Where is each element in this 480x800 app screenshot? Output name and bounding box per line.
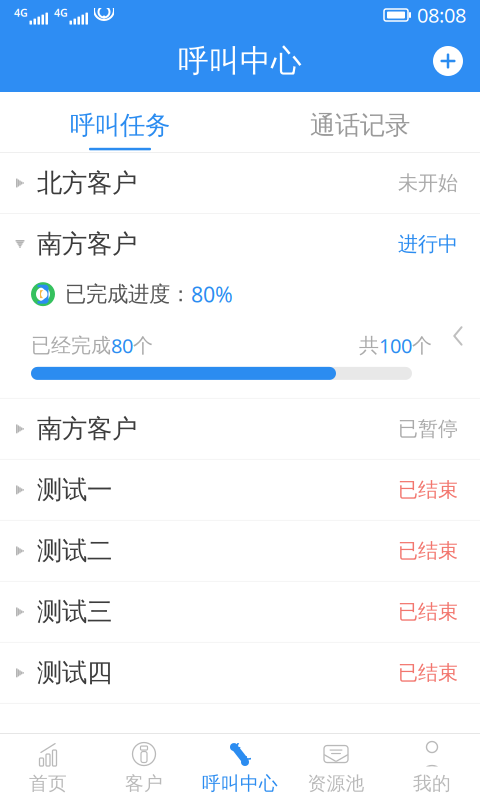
- button[interactable]: 测试二: [0, 521, 480, 581]
- staticText: 已经完成: [31, 333, 111, 358]
- staticText: 客户: [125, 772, 163, 795]
- staticText: 通话记录: [310, 110, 410, 141]
- button[interactable]: 南方客户: [0, 214, 480, 274]
- button[interactable]: 新建任务: [424, 37, 472, 85]
- button[interactable]: 南方客户: [0, 399, 480, 459]
- staticText: 已结束: [398, 600, 458, 624]
- staticText: 呼叫中心: [178, 42, 302, 80]
- staticText: 测试二: [37, 535, 112, 566]
- staticText: 进行中: [398, 232, 458, 256]
- staticText: 4G: [14, 5, 28, 20]
- staticText: 个: [412, 333, 432, 358]
- staticText: 已结束: [398, 661, 458, 685]
- staticText: 测试一: [37, 474, 112, 505]
- staticText: 已完成进度：: [65, 281, 191, 307]
- staticText: 呼叫任务: [70, 110, 170, 141]
- staticText: 4G: [54, 5, 68, 20]
- staticText: 资源池: [307, 772, 364, 795]
- staticText: 已结束: [398, 539, 458, 563]
- staticText: 测试三: [37, 596, 112, 627]
- staticText: 80: [111, 332, 133, 359]
- staticText: 未开始: [398, 171, 458, 195]
- staticText: 我的: [413, 772, 451, 795]
- staticText: 南方客户: [37, 413, 137, 444]
- button[interactable]: 测试一: [0, 460, 480, 520]
- button[interactable]: 已完成进度：: [0, 274, 480, 398]
- staticText: 首页: [29, 772, 67, 795]
- staticText: 南方客户: [37, 228, 137, 259]
- button[interactable]: 测试三: [0, 582, 480, 642]
- button[interactable]: 测试四: [0, 643, 480, 703]
- button[interactable]: 我的: [384, 734, 480, 800]
- staticText: 个: [133, 333, 153, 358]
- staticText: 呼叫中心: [202, 772, 278, 795]
- staticText: 80%: [191, 280, 233, 308]
- button[interactable]: 呼叫任务: [0, 92, 240, 152]
- staticText: 测试四: [37, 657, 112, 688]
- button[interactable]: 通话记录: [240, 92, 480, 152]
- button[interactable]: 首页: [0, 734, 96, 800]
- staticText: 100: [379, 332, 412, 359]
- button[interactable]: 客户: [96, 734, 192, 800]
- staticText: 08:08: [417, 2, 466, 28]
- staticText: 已暂停: [398, 417, 458, 441]
- button[interactable]: 资源池: [288, 734, 384, 800]
- staticText: 共: [359, 333, 379, 358]
- button[interactable]: 呼叫中心: [192, 734, 288, 800]
- staticText: 北方客户: [37, 167, 137, 198]
- staticText: 已结束: [398, 478, 458, 502]
- button[interactable]: 北方客户: [0, 153, 480, 213]
